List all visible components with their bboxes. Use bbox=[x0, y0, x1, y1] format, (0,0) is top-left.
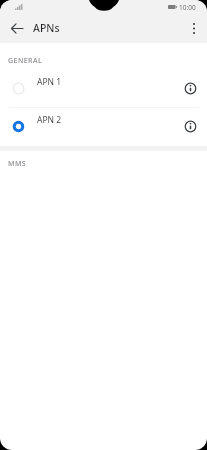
staticText: APN 1 bbox=[37, 76, 62, 88]
button[interactable]: APN 2 bbox=[0, 108, 207, 145]
staticText: APNs bbox=[33, 21, 60, 35]
staticText: 10:00 bbox=[179, 3, 196, 12]
button[interactable]: APN 1 bbox=[0, 70, 207, 107]
staticText: MMS bbox=[8, 159, 27, 169]
button[interactable]: More options bbox=[182, 16, 206, 40]
button[interactable]: About APN 2 bbox=[178, 114, 203, 139]
staticText: APN 2 bbox=[37, 114, 62, 126]
button[interactable]: Back bbox=[4, 16, 29, 41]
staticText: GENERAL bbox=[8, 56, 43, 66]
button[interactable]: About APN 1 bbox=[178, 76, 203, 101]
